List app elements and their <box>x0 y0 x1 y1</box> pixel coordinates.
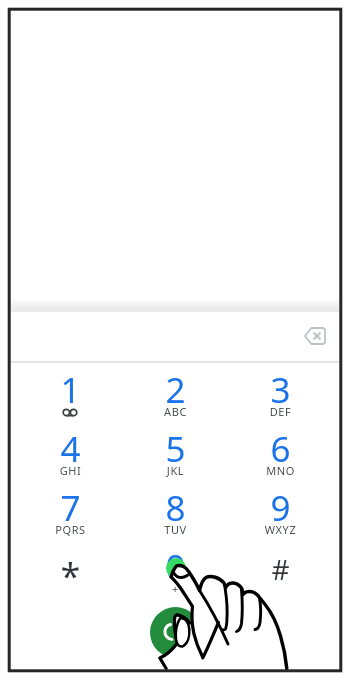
button[interactable]: 7 <box>18 481 123 540</box>
staticText: * <box>18 551 123 600</box>
button[interactable]: 5 <box>123 422 228 481</box>
staticText: 0 <box>123 543 228 591</box>
staticText: PQRS <box>18 522 123 537</box>
button[interactable]: 0 <box>123 540 228 599</box>
staticText: 6 <box>228 425 333 473</box>
button[interactable]: 8 <box>123 481 228 540</box>
staticText: # <box>228 550 333 588</box>
staticText: 5 <box>123 425 228 473</box>
staticText: + <box>123 581 228 596</box>
staticText: 8 <box>123 484 228 532</box>
staticText: GHI <box>18 463 123 478</box>
button[interactable]: 4 <box>18 422 123 481</box>
staticText: 3 <box>228 366 333 414</box>
staticText: 7 <box>18 484 123 532</box>
staticText: MNO <box>228 463 333 478</box>
staticText: 4 <box>18 425 123 473</box>
staticText: 1 <box>18 366 123 414</box>
staticText: 2 <box>123 366 228 414</box>
button[interactable]: 9 <box>228 481 333 540</box>
staticText: DEF <box>228 404 333 419</box>
button[interactable]: 3 <box>228 363 333 422</box>
button[interactable]: 2 <box>123 363 228 422</box>
staticText: 9 <box>228 484 333 532</box>
button[interactable]: * <box>18 540 123 599</box>
button[interactable] <box>150 607 201 658</box>
button[interactable]: # <box>228 540 333 599</box>
staticText: JKL <box>123 463 228 478</box>
button[interactable]: 1 <box>18 363 123 422</box>
staticText: TUV <box>123 522 228 537</box>
staticText: ABC <box>123 404 228 419</box>
button[interactable]: 6 <box>228 422 333 481</box>
staticText: WXYZ <box>228 522 333 537</box>
button[interactable] <box>297 318 333 354</box>
